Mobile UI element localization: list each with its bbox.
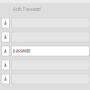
staticText: Auth: Password — [13, 7, 41, 12]
button[interactable]: password — [0, 44, 90, 58]
staticText: password — [13, 48, 30, 53]
button[interactable]: Text field — [0, 58, 90, 72]
button[interactable]: Text field — [0, 16, 90, 30]
button[interactable]: Text field — [0, 72, 90, 86]
button[interactable]: Text field — [0, 30, 90, 44]
